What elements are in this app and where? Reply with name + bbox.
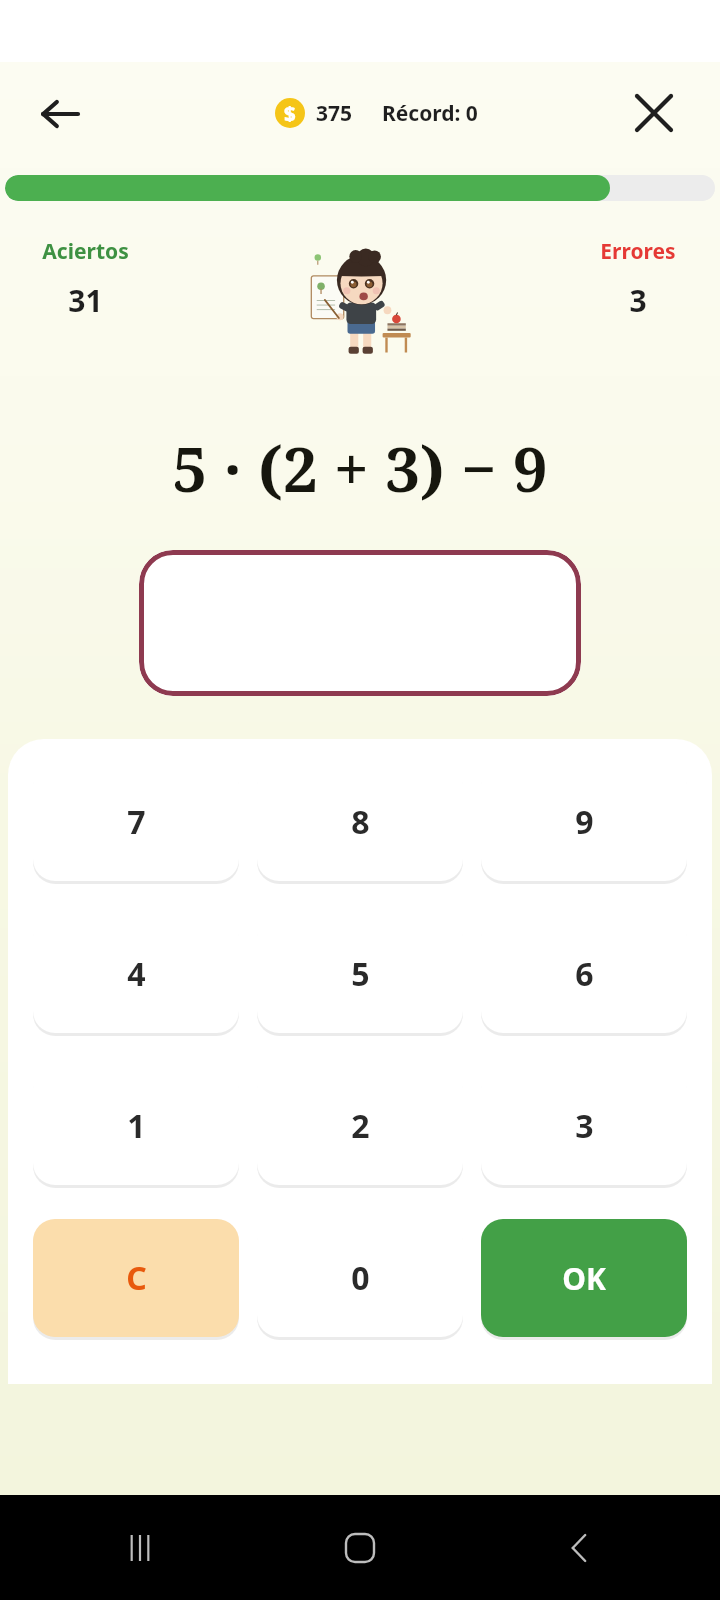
button[interactable]: 7 (33, 763, 239, 881)
staticText: 5 · (2 + 3) − 9 (172, 426, 548, 510)
button[interactable]: 1 (33, 1067, 239, 1185)
staticText: Errores (600, 237, 676, 266)
staticText: 3 (629, 280, 647, 321)
button[interactable]: 3 (481, 1067, 687, 1185)
button[interactable] (139, 550, 581, 696)
button[interactable]: C (33, 1219, 239, 1337)
staticText: 31 (68, 280, 103, 321)
button[interactable]: Recent apps (110, 1518, 170, 1578)
button[interactable]: 2 (257, 1067, 463, 1185)
staticText: 7 (127, 800, 146, 844)
staticText: 8 (351, 800, 370, 844)
button[interactable]: 4 (33, 915, 239, 1033)
staticText: $ (284, 100, 296, 127)
staticText: 9 (575, 800, 594, 844)
button[interactable]: 8 (257, 763, 463, 881)
button[interactable]: Back (550, 1518, 610, 1578)
staticText: 6 (575, 952, 594, 996)
staticText: 1 (127, 1104, 146, 1148)
button[interactable]: Back (28, 82, 92, 146)
button[interactable]: 6 (481, 915, 687, 1033)
button[interactable]: 5 (257, 915, 463, 1033)
staticText: C (126, 1256, 147, 1300)
staticText: 4 (127, 952, 146, 996)
staticText: 0 (351, 1256, 370, 1300)
button[interactable]: 9 (481, 763, 687, 881)
staticText: Récord: 0 (382, 99, 478, 128)
button[interactable]: 0 (257, 1219, 463, 1337)
staticText: 375 (316, 99, 353, 128)
staticText: Aciertos (42, 237, 129, 266)
staticText: 3 (575, 1104, 594, 1148)
staticText: 5 (351, 952, 370, 996)
staticText: 2 (351, 1104, 370, 1148)
staticText: OK (562, 1258, 606, 1299)
button[interactable]: Home (330, 1518, 390, 1578)
button[interactable]: Close (622, 81, 686, 145)
button[interactable]: OK (481, 1219, 687, 1337)
